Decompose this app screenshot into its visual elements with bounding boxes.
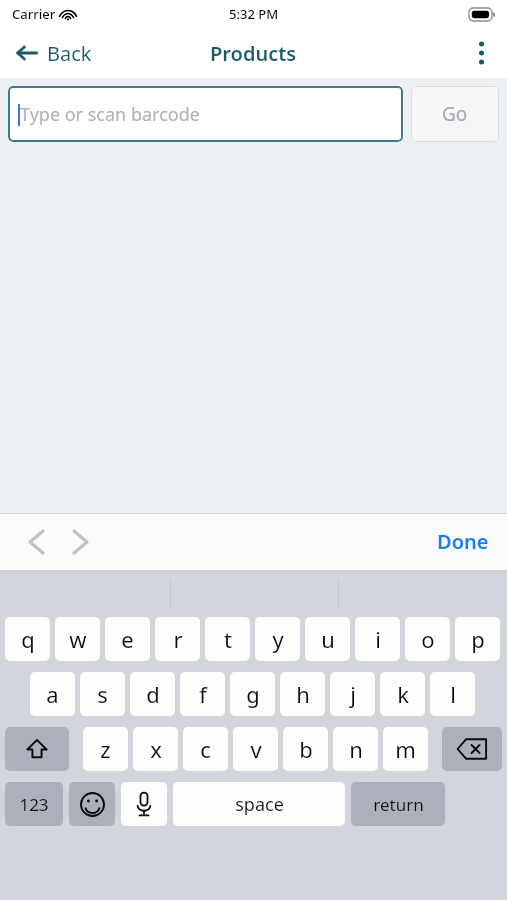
button[interactable]: u xyxy=(305,617,350,661)
button[interactable]: 123 xyxy=(5,782,63,826)
button[interactable]: n xyxy=(333,727,378,771)
staticText: f xyxy=(199,679,207,709)
staticText: b xyxy=(299,734,313,764)
button[interactable]: b xyxy=(283,727,328,771)
button[interactable]: q xyxy=(5,617,50,661)
button[interactable]: Type or scan barcode xyxy=(8,86,403,142)
button[interactable]: t xyxy=(205,617,250,661)
button[interactable]: Back xyxy=(0,28,104,78)
staticText: d xyxy=(146,679,160,709)
button[interactable]: o xyxy=(405,617,450,661)
button[interactable]: g xyxy=(230,672,275,716)
button[interactable]: More options xyxy=(455,28,507,78)
button[interactable]: Done xyxy=(419,513,507,570)
staticText: r xyxy=(173,624,183,654)
staticText: m xyxy=(395,734,416,764)
button[interactable]: w xyxy=(55,617,100,661)
staticText: j xyxy=(350,679,356,709)
staticText: v xyxy=(250,734,262,764)
staticText: p xyxy=(471,624,485,654)
staticText: Carrier xyxy=(12,5,56,23)
staticText: u xyxy=(321,624,335,654)
button[interactable]: a xyxy=(30,672,75,716)
staticText: space xyxy=(235,792,284,817)
button[interactable]: m xyxy=(383,727,428,771)
staticText: a xyxy=(46,679,59,709)
staticText: 5:32 PM xyxy=(229,5,279,23)
staticText: Products xyxy=(210,40,297,67)
staticText: Go xyxy=(442,101,468,127)
button[interactable]: Shift xyxy=(5,727,69,771)
button[interactable]: i xyxy=(355,617,400,661)
button[interactable]: p xyxy=(455,617,500,661)
button[interactable]: Emoji xyxy=(69,782,115,826)
button[interactable]: e xyxy=(105,617,150,661)
button[interactable]: Dictation xyxy=(121,782,167,826)
staticText: q xyxy=(21,624,35,654)
button[interactable]: v xyxy=(233,727,278,771)
button[interactable]: j xyxy=(330,672,375,716)
staticText: z xyxy=(100,734,111,764)
button[interactable]: space xyxy=(173,782,345,826)
staticText: c xyxy=(200,734,211,764)
button[interactable]: f xyxy=(180,672,225,716)
button[interactable]: r xyxy=(155,617,200,661)
staticText: t xyxy=(224,624,232,654)
button[interactable]: s xyxy=(80,672,125,716)
button[interactable]: return xyxy=(351,782,445,826)
button[interactable]: h xyxy=(280,672,325,716)
staticText: return xyxy=(373,793,424,816)
staticText: o xyxy=(421,624,435,654)
staticText: 123 xyxy=(19,793,49,816)
staticText: s xyxy=(97,679,108,709)
button[interactable]: c xyxy=(183,727,228,771)
button[interactable]: k xyxy=(380,672,425,716)
button[interactable]: z xyxy=(83,727,128,771)
staticText: Back xyxy=(47,40,92,67)
staticText: k xyxy=(397,679,409,709)
button[interactable]: Backspace xyxy=(442,727,502,771)
staticText: Done xyxy=(437,528,489,555)
button[interactable]: x xyxy=(133,727,178,771)
staticText: h xyxy=(296,679,310,709)
staticText: x xyxy=(150,734,162,764)
staticText: Type or scan barcode xyxy=(20,102,200,127)
staticText: l xyxy=(450,679,456,709)
staticText: e xyxy=(121,624,134,654)
button[interactable]: d xyxy=(130,672,175,716)
staticText: g xyxy=(246,679,260,709)
staticText: n xyxy=(349,734,363,764)
staticText: w xyxy=(69,624,87,654)
button[interactable]: Previous field xyxy=(16,522,56,562)
button[interactable]: Go xyxy=(411,86,499,142)
staticText: i xyxy=(375,624,381,654)
button[interactable]: y xyxy=(255,617,300,661)
button[interactable]: Next field xyxy=(60,522,100,562)
button[interactable]: l xyxy=(430,672,475,716)
staticText: y xyxy=(272,624,284,654)
